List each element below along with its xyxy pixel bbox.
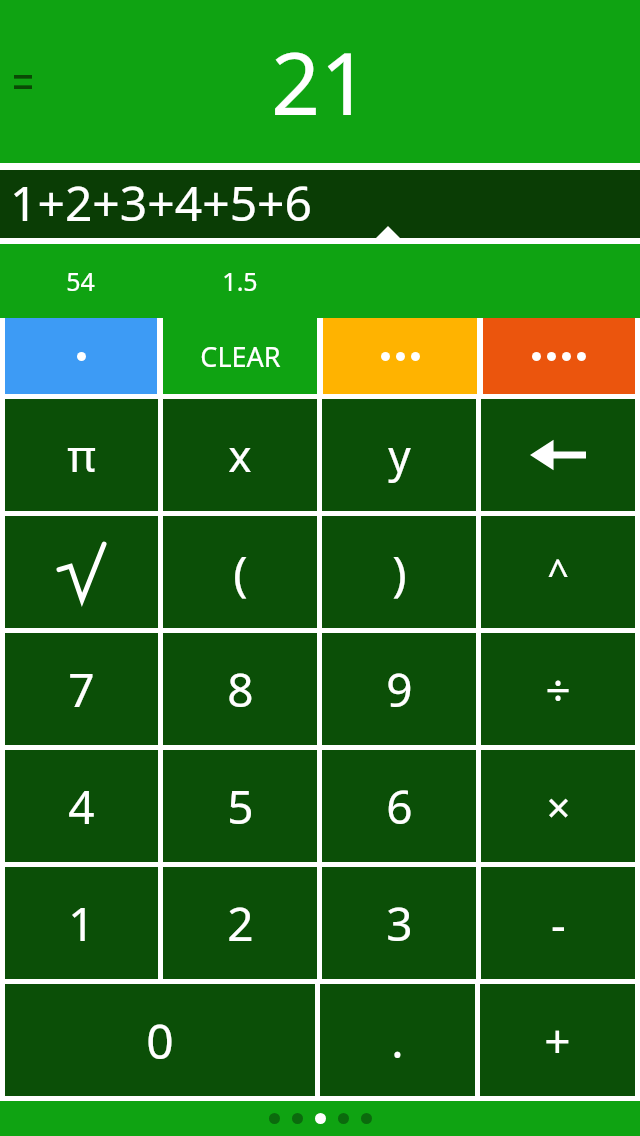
button[interactable]: Page 4 bbox=[338, 1113, 349, 1124]
staticText: π bbox=[67, 425, 96, 485]
button[interactable]: 8 bbox=[163, 633, 317, 745]
button[interactable]: × bbox=[481, 750, 635, 862]
staticText: . bbox=[391, 1009, 404, 1072]
staticText: - bbox=[551, 892, 566, 955]
button[interactable]: Square root bbox=[5, 516, 158, 628]
button[interactable]: y bbox=[322, 399, 476, 511]
staticText: ÷ bbox=[545, 659, 571, 719]
button[interactable]: π bbox=[5, 399, 158, 511]
button[interactable]: 4 bbox=[5, 750, 158, 862]
button[interactable]: Page 3 bbox=[315, 1113, 326, 1124]
button[interactable]: 2 bbox=[163, 867, 317, 979]
button[interactable]: One dot bbox=[5, 318, 157, 394]
button[interactable]: ( bbox=[163, 516, 317, 628]
button[interactable]: Three dots bbox=[323, 318, 477, 394]
button[interactable]: 6 bbox=[322, 750, 476, 862]
staticText: 1 bbox=[68, 892, 95, 955]
button[interactable]: 0 bbox=[5, 984, 315, 1096]
staticText: ^ bbox=[547, 546, 569, 598]
staticText: y bbox=[388, 425, 411, 485]
staticText: 5 bbox=[227, 775, 254, 838]
staticText: CLEAR bbox=[200, 338, 281, 375]
button[interactable]: . bbox=[320, 984, 475, 1096]
staticText: 9 bbox=[386, 658, 413, 721]
button[interactable]: 9 bbox=[322, 633, 476, 745]
staticText: ( bbox=[233, 540, 248, 605]
button[interactable]: 1+2+3+4+5+6 bbox=[0, 170, 640, 238]
button[interactable]: ) bbox=[322, 516, 476, 628]
button[interactable]: 54 bbox=[0, 244, 160, 318]
staticText: 1+2+3+4+5+6 bbox=[10, 170, 313, 234]
button[interactable]: + bbox=[480, 984, 635, 1096]
staticText: 2 bbox=[227, 892, 254, 955]
staticText: 4 bbox=[68, 775, 95, 838]
staticText: 7 bbox=[68, 658, 95, 721]
button[interactable]: x bbox=[163, 399, 317, 511]
button[interactable]: 21 bbox=[0, 0, 640, 163]
staticText: 0 bbox=[146, 1008, 174, 1073]
staticText: 6 bbox=[386, 775, 413, 838]
button[interactable]: Page 2 bbox=[292, 1113, 303, 1124]
staticText: 3 bbox=[386, 892, 413, 955]
button[interactable]: Backspace bbox=[481, 399, 635, 511]
button[interactable]: Four dots bbox=[483, 318, 635, 394]
button[interactable]: - bbox=[481, 867, 635, 979]
staticText: 54 bbox=[66, 264, 95, 298]
button[interactable]: 5 bbox=[163, 750, 317, 862]
staticText: 8 bbox=[227, 658, 254, 721]
button[interactable]: 7 bbox=[5, 633, 158, 745]
staticText: × bbox=[546, 778, 571, 835]
button[interactable]: 1.5 bbox=[160, 244, 320, 318]
button[interactable]: ÷ bbox=[481, 633, 635, 745]
staticText: x bbox=[228, 425, 252, 485]
button[interactable]: CLEAR bbox=[163, 318, 317, 394]
button[interactable]: Page 5 bbox=[361, 1113, 372, 1124]
button[interactable]: 1 bbox=[5, 867, 158, 979]
button[interactable]: 3 bbox=[322, 867, 476, 979]
button[interactable]: ^ bbox=[481, 516, 635, 628]
staticText: 1.5 bbox=[222, 264, 258, 298]
staticText: + bbox=[544, 1009, 571, 1072]
staticText: 21 bbox=[271, 23, 370, 140]
button[interactable]: Page 1 bbox=[269, 1113, 280, 1124]
staticText: ) bbox=[392, 540, 407, 605]
